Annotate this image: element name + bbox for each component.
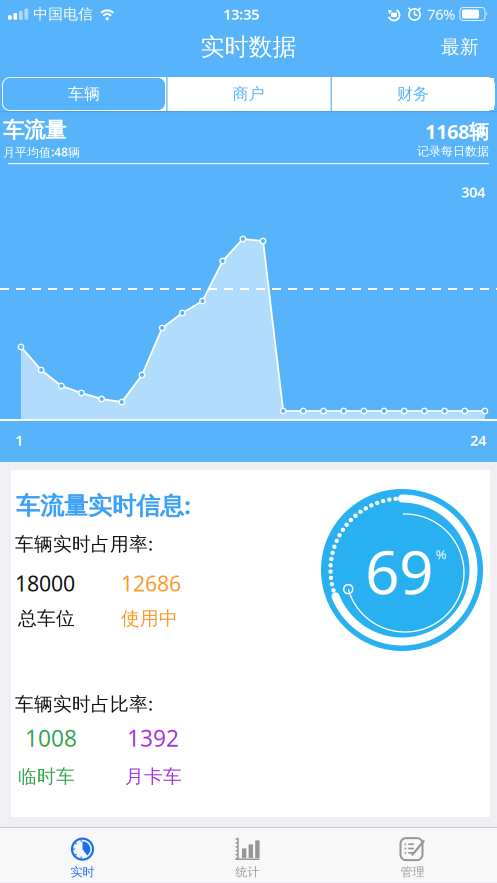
- button[interactable]: 财务: [332, 78, 494, 110]
- button[interactable]: 车辆: [3, 78, 165, 110]
- staticText: 商户: [232, 84, 264, 104]
- staticText: %: [435, 545, 446, 563]
- staticText: 记录每日数据: [417, 144, 489, 159]
- staticText: 财务: [397, 84, 429, 104]
- staticText: 实时: [70, 865, 94, 879]
- staticText: 13:35: [223, 4, 259, 24]
- staticText: 月卡车: [125, 765, 182, 788]
- staticText: 69: [365, 531, 433, 611]
- button[interactable]: 最新: [441, 35, 479, 58]
- button[interactable]: 商户: [168, 78, 329, 110]
- staticText: 管理: [400, 865, 424, 879]
- staticText: 1168辆: [425, 118, 489, 145]
- staticText: 中国电信: [33, 5, 93, 23]
- staticText: 1392: [127, 723, 179, 753]
- staticText: 总车位: [18, 607, 75, 630]
- staticText: 76%: [427, 4, 455, 24]
- staticText: 实时数据: [200, 32, 296, 62]
- staticText: 车流量: [3, 117, 66, 143]
- staticText: 1: [15, 430, 23, 450]
- staticText: 1008: [25, 723, 77, 753]
- staticText: 使用中: [121, 607, 178, 630]
- staticText: 最新: [441, 35, 479, 58]
- staticText: 统计: [235, 865, 259, 879]
- staticText: 18000: [15, 569, 75, 597]
- staticText: 车辆实时占比率:: [15, 691, 153, 716]
- button[interactable]: 管理: [330, 832, 495, 883]
- staticText: 车流量实时信息:: [16, 489, 191, 521]
- staticText: 24: [470, 430, 486, 450]
- staticText: 临时车: [18, 765, 75, 788]
- staticText: 车辆: [68, 84, 100, 104]
- staticText: 月平均值:48辆: [3, 144, 80, 160]
- button[interactable]: 统计: [165, 832, 330, 883]
- staticText: 304: [461, 182, 485, 201]
- staticText: 12686: [121, 569, 181, 597]
- button[interactable]: 实时: [0, 832, 165, 883]
- staticText: 车辆实时占用率:: [15, 531, 153, 556]
